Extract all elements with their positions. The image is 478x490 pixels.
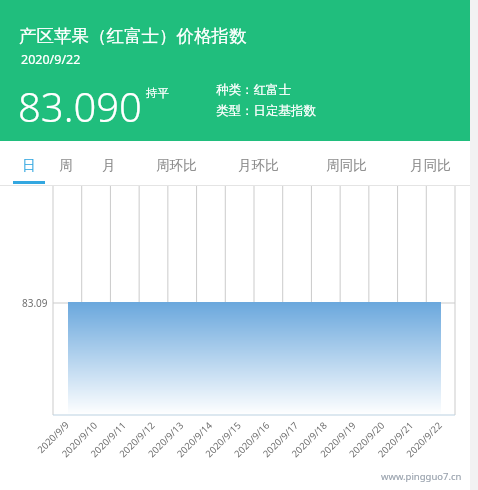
staticText: 月环比 <box>238 157 279 174</box>
staticText: 83.090 <box>18 79 142 133</box>
button[interactable]: 月 <box>93 141 125 185</box>
button[interactable]: 月环比 <box>226 141 290 185</box>
staticText: 周环比 <box>156 157 197 174</box>
button[interactable]: 周同比 <box>314 141 378 185</box>
staticText: 种类：红富士 <box>216 82 291 98</box>
staticText: 月同比 <box>410 157 451 174</box>
staticText: 周 <box>59 157 73 174</box>
staticText: 2020/9/22 <box>21 51 81 68</box>
staticText: 日 <box>22 157 36 174</box>
button[interactable]: 月同比 <box>398 141 462 185</box>
button[interactable]: 周环比 <box>144 141 208 185</box>
button[interactable]: 周 <box>50 141 82 185</box>
staticText: 月 <box>102 157 116 174</box>
button[interactable]: 日 <box>13 141 45 185</box>
staticText: 产区苹果（红富士）价格指数 <box>19 25 247 47</box>
staticText: 类型：日定基指数 <box>216 103 316 119</box>
staticText: 周同比 <box>326 157 367 174</box>
staticText: 持平 <box>146 86 169 100</box>
